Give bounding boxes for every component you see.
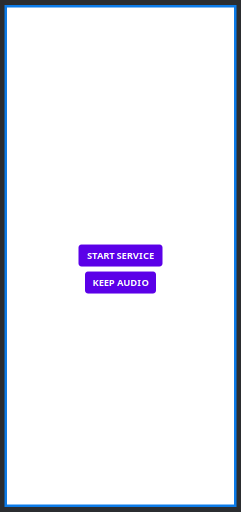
button[interactable]: START SERVICE	[78, 244, 162, 266]
button[interactable]: KEEP AUDIO	[85, 271, 156, 293]
staticText: KEEP AUDIO	[93, 276, 148, 289]
staticText: START SERVICE	[87, 249, 154, 262]
